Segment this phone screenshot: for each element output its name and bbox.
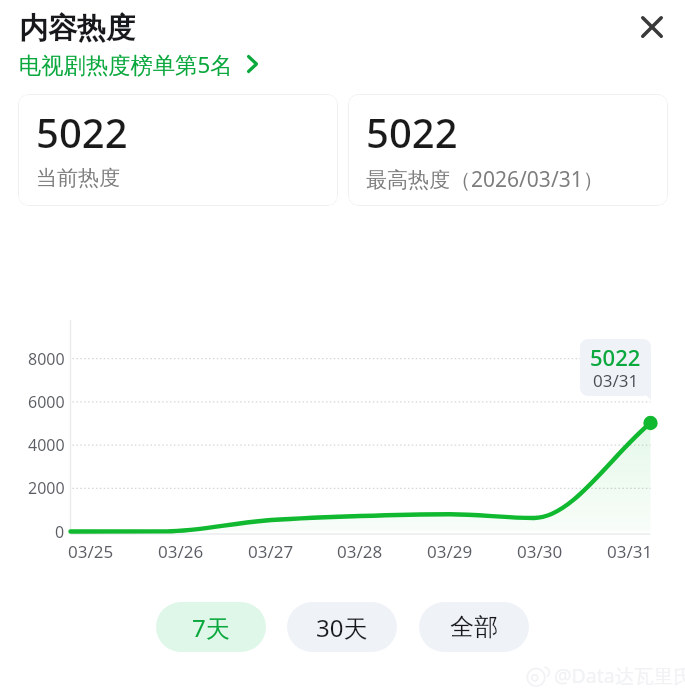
staticText: 7天 (192, 611, 230, 644)
staticText: 5022 (590, 342, 641, 372)
staticText: 电视剧热度榜单第5名 (19, 49, 233, 79)
staticText: @Data达瓦里氏 (554, 662, 685, 689)
staticText: 30天 (316, 611, 368, 644)
staticText: 03/31 (593, 369, 639, 392)
staticText: 03/29 (427, 540, 473, 562)
staticText: 5022 (36, 105, 128, 159)
staticText: 4000 (28, 434, 65, 456)
staticText: 03/26 (158, 540, 204, 562)
staticText: 当前热度 (36, 165, 120, 191)
staticText: 03/31 (607, 540, 653, 562)
staticText: 2000 (28, 477, 65, 499)
button[interactable]: 电视剧热度榜单第5名 (19, 49, 258, 79)
button[interactable]: Close (630, 5, 674, 49)
staticText: 8000 (28, 348, 65, 370)
staticText: 5022 (366, 105, 458, 159)
staticText: 03/28 (337, 540, 383, 562)
staticText: 03/27 (248, 540, 294, 562)
staticText: 03/30 (517, 540, 563, 562)
button[interactable]: 全部 (419, 602, 529, 652)
staticText: 内容热度 (19, 10, 135, 47)
staticText: 03/25 (68, 540, 114, 562)
staticText: 6000 (28, 391, 65, 413)
staticText: 全部 (450, 612, 498, 642)
staticText: 0 (55, 521, 65, 543)
button[interactable]: 5022 (348, 94, 668, 206)
button[interactable]: 30天 (287, 602, 397, 652)
staticText: 最高热度（2026/03/31） (366, 165, 604, 194)
button[interactable]: 7天 (156, 602, 266, 652)
button[interactable]: 5022 (18, 94, 338, 206)
